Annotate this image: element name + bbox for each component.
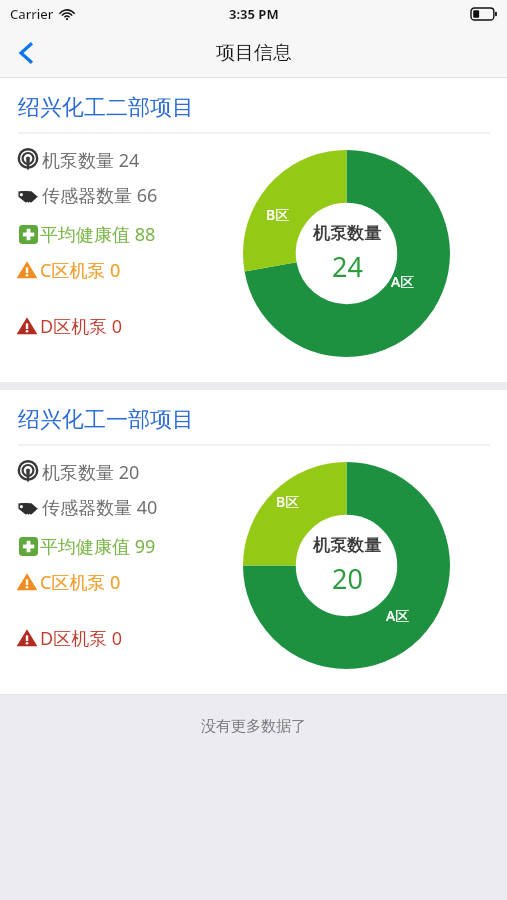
staticText: C区机泵 0	[40, 570, 121, 595]
staticText: A区	[391, 272, 415, 291]
staticText: 机泵数量 20	[42, 460, 140, 485]
staticText: Carrier	[10, 5, 54, 23]
staticText: B区	[276, 492, 300, 511]
staticText: 绍兴化工二部项目	[18, 94, 194, 122]
staticText: C区机泵 0	[40, 258, 121, 283]
staticText: 平均健康值 88	[40, 222, 156, 247]
staticText: D区机泵 0	[40, 314, 123, 339]
button[interactable]: 绍兴化工一部项目	[0, 390, 507, 694]
staticText: 传感器数量 66	[42, 183, 158, 208]
staticText: D区机泵 0	[40, 626, 123, 651]
button[interactable]: 绍兴化工二部项目	[0, 78, 507, 382]
staticText: 绍兴化工一部项目	[18, 406, 194, 434]
staticText: A区	[386, 606, 410, 625]
staticText: 24	[332, 248, 363, 285]
staticText: B区	[266, 205, 290, 224]
staticText: 3:35 PM	[229, 5, 279, 23]
staticText: 传感器数量 40	[42, 495, 158, 520]
staticText: 20	[332, 560, 363, 597]
staticText: 项目信息	[216, 41, 292, 65]
staticText: 没有更多数据了	[201, 717, 306, 736]
staticText: 平均健康值 99	[40, 534, 156, 559]
button[interactable]: Back	[0, 28, 52, 77]
staticText: 机泵数量	[313, 535, 381, 556]
staticText: 机泵数量	[313, 223, 381, 244]
staticText: 机泵数量 24	[42, 148, 140, 173]
